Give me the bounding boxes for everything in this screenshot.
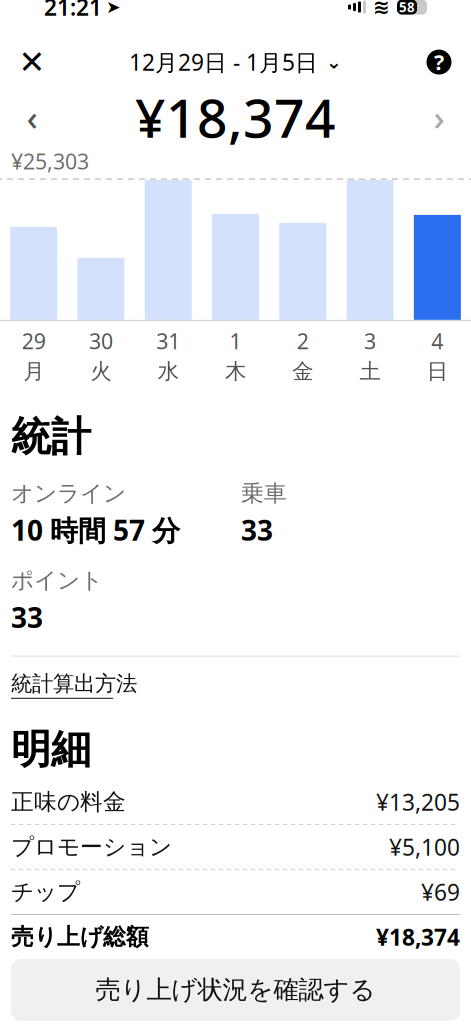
button[interactable]: 次の週	[417, 92, 461, 142]
staticText: ›	[433, 94, 444, 140]
staticText: ポイント	[11, 567, 103, 594]
button[interactable]: 売り上げ状況を確認する	[11, 959, 460, 1021]
button[interactable]: 前の週	[10, 92, 54, 142]
staticText: 統計算出方法	[11, 671, 137, 697]
staticText: 33	[241, 511, 273, 549]
staticText: 10 時間 57 分	[11, 511, 180, 549]
staticText: オンライン	[11, 480, 126, 507]
staticText: 29	[22, 327, 46, 355]
staticText: 31	[156, 327, 180, 355]
staticText: 3	[364, 327, 376, 355]
staticText: ✕	[18, 44, 45, 80]
staticText: ?	[434, 48, 444, 76]
staticText: 月	[23, 358, 44, 384]
staticText: ‹	[26, 94, 37, 140]
staticText: ¥18,374	[376, 922, 460, 952]
staticText: 21:21	[44, 0, 102, 22]
staticText: 売り上げ状況を確認する	[95, 974, 375, 1005]
staticText: ≋	[373, 0, 390, 18]
staticText: 4	[431, 327, 443, 355]
staticText: 正味の料金	[11, 788, 126, 816]
staticText: ¥69	[421, 877, 460, 907]
staticText: ¥18,374	[135, 82, 336, 152]
staticText: 乗車	[241, 480, 287, 507]
staticText: 木	[225, 358, 246, 384]
button[interactable]: 統計算出方法	[11, 671, 137, 699]
staticText: 明細	[11, 725, 91, 774]
staticText: 土	[360, 358, 381, 384]
staticText: 33	[11, 598, 43, 636]
staticText: ➤	[106, 0, 121, 17]
staticText: 売り上げ総額	[11, 923, 149, 951]
button[interactable]: ヘルプ	[417, 40, 461, 84]
staticText: ¥5,100	[389, 832, 460, 862]
staticText: 日	[427, 358, 448, 384]
button[interactable]: 閉じる	[10, 40, 54, 84]
staticText: 火	[90, 358, 111, 384]
staticText: 58	[399, 0, 415, 16]
staticText: 1	[229, 327, 241, 355]
staticText: 30	[89, 327, 113, 355]
staticText: ¥13,205	[376, 787, 460, 817]
staticText: 12月29日 - 1月5日	[129, 47, 318, 77]
staticText: チップ	[11, 878, 80, 906]
staticText: 2	[297, 327, 309, 355]
button[interactable]: 12月29日 - 1月5日	[121, 40, 350, 84]
staticText: ¥25,303	[11, 147, 89, 175]
staticText: 金	[292, 358, 313, 384]
staticText: ⌄	[326, 51, 342, 73]
staticText: プロモーション	[11, 833, 172, 861]
staticText: 統計	[11, 412, 91, 461]
staticText: 水	[158, 358, 179, 384]
